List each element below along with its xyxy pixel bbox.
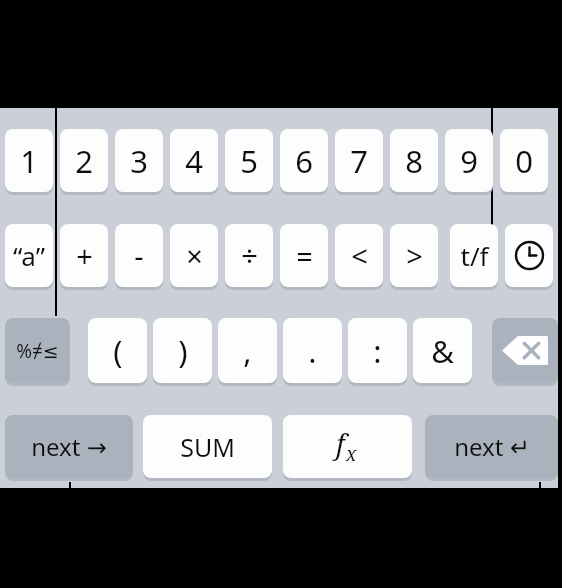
staticText: 6	[295, 140, 313, 182]
staticText: f	[336, 425, 345, 462]
staticText: 5	[240, 140, 258, 182]
staticText: 0	[515, 140, 533, 182]
staticText: “a”	[13, 238, 45, 273]
button[interactable]: next ↵	[425, 415, 558, 481]
button[interactable]: %≠≤	[5, 318, 70, 386]
staticText: 2	[75, 140, 93, 182]
staticText: .	[308, 330, 317, 372]
button[interactable]: ×	[170, 224, 218, 290]
button[interactable]: )	[153, 318, 212, 386]
button[interactable]: Insert time	[505, 224, 553, 290]
staticText: x	[346, 441, 357, 467]
staticText: <	[351, 236, 368, 275]
button[interactable]: 1	[5, 129, 53, 195]
staticText: +	[76, 236, 93, 275]
staticText: 1	[20, 140, 38, 182]
button[interactable]: ÷	[225, 224, 273, 290]
button[interactable]: -	[115, 224, 163, 290]
button[interactable]: 6	[280, 129, 328, 195]
staticText: next ↵	[454, 430, 530, 463]
button[interactable]: +	[60, 224, 108, 290]
staticText: ÷	[241, 236, 258, 275]
button[interactable]: 2	[60, 129, 108, 195]
staticText: ×	[186, 236, 203, 275]
button[interactable]: “a”	[5, 224, 53, 290]
staticText: %≠≤	[16, 338, 59, 364]
button[interactable]: >	[390, 224, 438, 290]
staticText: SUM	[180, 430, 235, 464]
button[interactable]: 4	[170, 129, 218, 195]
staticText: -	[134, 236, 144, 275]
button[interactable]: SUM	[143, 415, 272, 481]
button[interactable]: 7	[335, 129, 383, 195]
staticText: (	[113, 330, 123, 372]
button[interactable]: 3	[115, 129, 163, 195]
staticText: =	[296, 236, 313, 275]
button[interactable]: 0	[500, 129, 548, 195]
button[interactable]: .	[283, 318, 342, 386]
staticText: ,	[243, 330, 252, 372]
button[interactable]: 9	[445, 129, 493, 195]
staticText: next →	[31, 430, 107, 463]
staticText: &	[431, 330, 454, 372]
button[interactable]: t/f	[450, 224, 498, 290]
staticText: t/f	[460, 238, 489, 273]
button[interactable]: <	[335, 224, 383, 290]
button[interactable]: =	[280, 224, 328, 290]
staticText: 8	[405, 140, 423, 182]
button[interactable]: &	[413, 318, 472, 386]
staticText: >	[406, 236, 423, 275]
button[interactable]: next →	[5, 415, 133, 481]
staticText: 3	[130, 140, 148, 182]
button[interactable]: Backspace	[492, 318, 558, 386]
button[interactable]: 8	[390, 129, 438, 195]
button[interactable]: :	[348, 318, 407, 386]
staticText: 7	[350, 140, 368, 182]
staticText: 9	[460, 140, 478, 182]
button[interactable]: 5	[225, 129, 273, 195]
button[interactable]: (	[88, 318, 147, 386]
button[interactable]: Function	[283, 415, 412, 481]
staticText: 4	[185, 140, 203, 182]
button[interactable]: ,	[218, 318, 277, 386]
staticText: )	[178, 330, 188, 372]
staticText: :	[373, 330, 382, 372]
